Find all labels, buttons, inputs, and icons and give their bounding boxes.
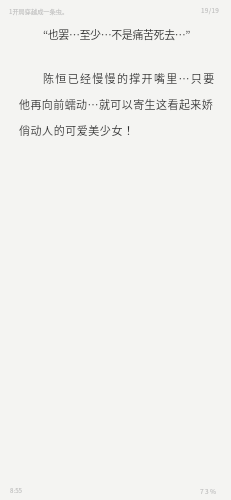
staticText: 73%: [200, 486, 218, 496]
staticText: 俏动人的可爱美少女！: [19, 122, 135, 138]
staticText: 8:55: [10, 486, 23, 495]
staticText: 陈恒已经慢慢的撑开嘴里…只要: [43, 70, 216, 86]
staticText: 1开局穿越成一条虫。: [9, 7, 69, 16]
staticText: 19/19: [201, 6, 220, 15]
button[interactable]: 1开局穿越成一条虫。: [0, 0, 231, 500]
staticText: 他再向前蠕动…就可以寄生这看起来娇: [19, 96, 214, 112]
staticText: “也罢…至少…不是痛苦死去…”: [43, 26, 191, 42]
